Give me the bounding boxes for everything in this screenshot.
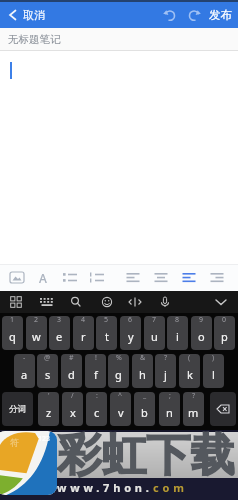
button[interactable]: 9	[191, 316, 212, 350]
button[interactable]	[58, 264, 88, 291]
staticText: 分词	[9, 404, 26, 415]
button[interactable]: #	[61, 354, 82, 388]
staticText: 5	[104, 316, 109, 325]
staticText: (	[188, 354, 191, 363]
button[interactable]: !	[85, 354, 106, 388]
button[interactable]: 发布	[209, 8, 232, 22]
button[interactable]	[34, 291, 68, 313]
button[interactable]: 2	[26, 316, 47, 350]
button[interactable]: (	[179, 354, 200, 388]
staticText: z	[46, 405, 52, 420]
staticText: u	[151, 329, 158, 344]
staticText: 4	[81, 316, 86, 325]
staticText: 发布	[209, 8, 232, 22]
staticText: b	[141, 405, 148, 420]
button[interactable]	[118, 264, 148, 291]
staticText: 123	[38, 434, 51, 444]
button[interactable]	[68, 291, 102, 313]
staticText: &	[140, 354, 146, 363]
button[interactable]	[148, 264, 178, 291]
staticText: com	[153, 480, 188, 495]
staticText: 6	[128, 316, 133, 325]
staticText: 8	[175, 316, 180, 325]
staticText: 9	[199, 316, 204, 325]
button[interactable]	[0, 291, 34, 313]
staticText: 7	[152, 316, 157, 325]
staticText: n	[166, 405, 173, 420]
button[interactable]: 取消	[6, 8, 45, 22]
button[interactable]	[208, 264, 238, 291]
staticText: ;	[169, 392, 171, 401]
staticText: _	[143, 392, 147, 401]
staticText: x	[70, 405, 76, 420]
button[interactable]: 1	[2, 316, 23, 350]
button[interactable]	[204, 291, 238, 313]
staticText: /	[71, 392, 74, 401]
button[interactable]	[186, 8, 202, 22]
button[interactable]: ?	[155, 354, 176, 388]
staticText: 1	[10, 316, 15, 325]
button[interactable]: /	[62, 392, 83, 426]
staticText: m	[188, 405, 199, 420]
staticText: t	[105, 329, 109, 344]
button[interactable]: ;	[159, 392, 180, 426]
staticText: www.7hon.	[57, 480, 153, 495]
button[interactable]	[88, 264, 118, 291]
staticText: :	[96, 392, 98, 401]
staticText: h	[139, 367, 146, 382]
staticText: l	[212, 367, 215, 382]
button[interactable]	[29, 264, 58, 291]
button[interactable]: 8	[167, 316, 188, 350]
button[interactable]: %	[108, 354, 129, 388]
button[interactable]	[178, 264, 208, 291]
button[interactable]: 0	[214, 316, 235, 350]
staticText: !	[95, 354, 97, 363]
button[interactable]: 分词	[2, 392, 33, 426]
button[interactable]: -	[14, 354, 35, 388]
staticText: v	[118, 405, 124, 420]
staticText: ^	[118, 392, 123, 401]
staticText: 取消	[23, 8, 45, 22]
staticText: r	[81, 329, 86, 344]
staticText: 符	[10, 437, 19, 448]
staticText: s	[45, 367, 51, 382]
button[interactable]: 7	[144, 316, 165, 350]
staticText: 2	[34, 316, 39, 325]
button[interactable]	[136, 291, 170, 313]
button[interactable]	[0, 264, 29, 291]
button[interactable]	[210, 392, 236, 426]
staticText: '	[48, 392, 50, 401]
button[interactable]: 6	[120, 316, 141, 350]
staticText: j	[164, 367, 167, 382]
button[interactable]: )	[203, 354, 224, 388]
button[interactable]: 彩虹下载	[0, 430, 238, 500]
button[interactable]: @	[37, 354, 58, 388]
staticText: #	[69, 354, 74, 363]
button[interactable]: ?	[183, 392, 204, 426]
button[interactable]	[162, 8, 178, 22]
staticText: p	[221, 329, 228, 344]
button[interactable]: 5	[96, 316, 117, 350]
staticText: g	[115, 367, 122, 382]
staticText: e	[56, 329, 63, 344]
staticText: w	[32, 329, 41, 344]
staticText: f	[94, 367, 98, 382]
staticText: 无标题笔记	[8, 33, 61, 46]
button[interactable]: _	[134, 392, 155, 426]
staticText: k	[187, 367, 193, 382]
staticText: y	[128, 329, 134, 344]
staticText: c	[94, 405, 100, 420]
staticText: )	[212, 354, 215, 363]
staticText: 0	[222, 316, 227, 325]
staticText: ?	[164, 354, 168, 363]
button[interactable]	[102, 291, 136, 313]
button[interactable]: 3	[49, 316, 70, 350]
button[interactable]: :	[86, 392, 107, 426]
staticText: i	[176, 329, 179, 344]
button[interactable]: ^	[110, 392, 131, 426]
button[interactable]: '	[38, 392, 59, 426]
button[interactable]: 4	[73, 316, 94, 350]
button[interactable]: &	[132, 354, 153, 388]
staticText: -	[23, 354, 26, 363]
